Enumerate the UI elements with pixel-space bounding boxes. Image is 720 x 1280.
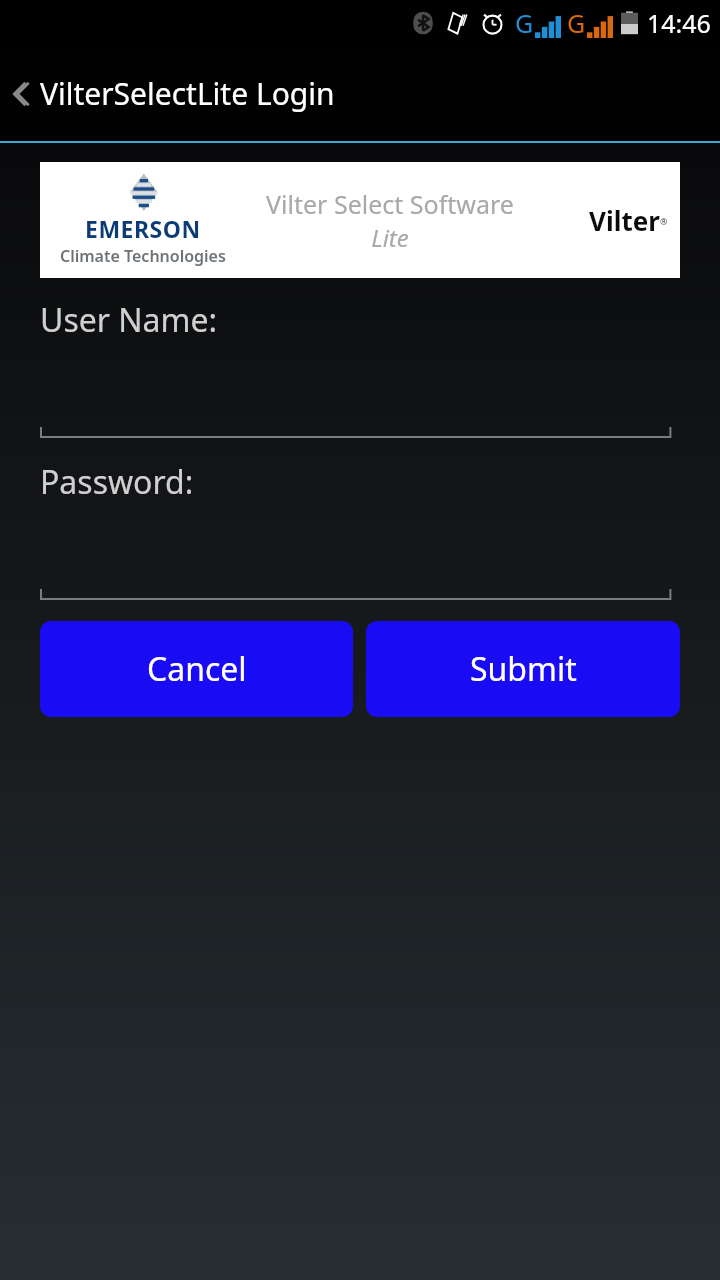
staticText: Vilter Select Software [266,187,514,221]
staticText: ® [660,215,668,227]
button[interactable]: Password input [40,564,680,600]
button[interactable]: Submit [366,621,680,717]
staticText: Submit [470,647,577,691]
staticText: EMERSON [85,213,201,244]
staticText: Lite [371,221,409,254]
staticText: 14:46 [647,6,711,40]
staticText: Climate Technologies [60,245,226,267]
staticText: Cancel [147,647,247,691]
staticText: G [515,6,534,40]
staticText: User Name: [40,298,218,342]
staticText: VilterSelectLite Login [40,73,335,114]
staticText: G [567,6,586,40]
other: Back [10,77,28,111]
staticText: Vilter [589,203,660,238]
button[interactable]: Back [0,46,720,141]
staticText: Password: [40,460,194,504]
button[interactable]: User Name input [40,402,680,438]
button[interactable]: Cancel [40,621,353,717]
